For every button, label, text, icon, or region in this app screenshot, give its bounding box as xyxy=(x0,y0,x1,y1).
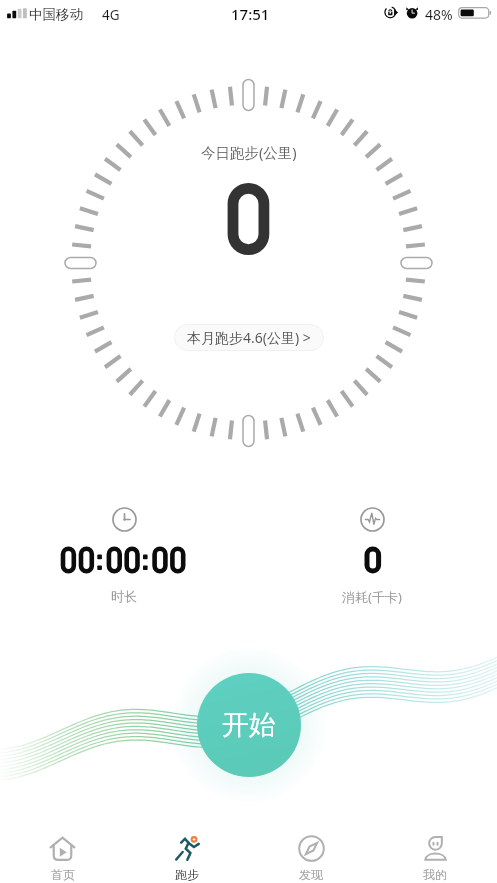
button[interactable]: 开始 xyxy=(197,673,301,777)
button[interactable]: 发现 xyxy=(249,821,373,883)
staticText: 首页 xyxy=(51,867,75,882)
staticText: 发现 xyxy=(299,867,323,882)
staticText: 时长 xyxy=(111,588,137,604)
button[interactable]: 首页 xyxy=(0,821,125,883)
staticText: 今日跑步(公里) xyxy=(201,142,297,162)
staticText: 48% xyxy=(425,5,453,24)
other: 首页 xyxy=(49,835,76,862)
other: 我的 xyxy=(422,835,449,862)
button[interactable]: 我的 xyxy=(373,821,497,883)
staticText: 跑步 xyxy=(175,867,199,882)
staticText: 17:51 xyxy=(231,4,270,24)
button[interactable]: 跑步 xyxy=(125,821,249,883)
staticText: 消耗(千卡) xyxy=(342,588,402,606)
staticText: 中国移动 xyxy=(29,6,83,23)
staticText: 开始 xyxy=(222,708,276,742)
other: 发现 xyxy=(298,835,325,862)
other: 跑步 xyxy=(174,835,201,862)
button[interactable]: 本月跑步4.6(公里) > xyxy=(174,324,324,351)
staticText: 4G xyxy=(102,6,120,24)
staticText: 我的 xyxy=(423,867,447,882)
staticText: 本月跑步4.6(公里) > xyxy=(187,328,311,347)
